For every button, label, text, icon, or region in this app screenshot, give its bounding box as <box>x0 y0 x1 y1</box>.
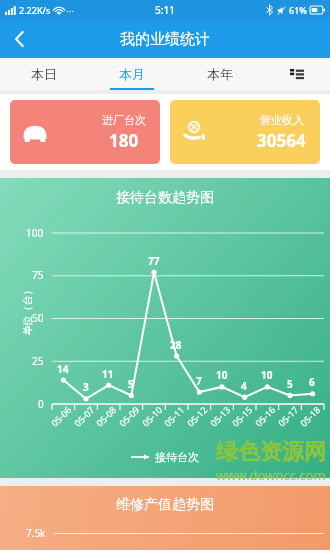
staticText: 单位（台） <box>20 285 33 335</box>
staticText: 05-17 <box>275 403 301 429</box>
staticText: 11 <box>102 367 114 381</box>
staticText: 本月 <box>119 66 145 82</box>
button[interactable]: 营业收入 <box>170 100 320 164</box>
button[interactable]: 进厂台次 <box>10 100 160 164</box>
staticText: 维修产值趋势图 <box>0 496 330 514</box>
staticText: 100 <box>26 226 44 240</box>
staticText: 本年 <box>207 66 233 82</box>
staticText: 05-12 <box>184 403 210 429</box>
staticText: 10 <box>216 368 228 382</box>
button[interactable]: More options <box>264 58 330 90</box>
staticText: 77 <box>148 254 160 268</box>
staticText: 接待台次 <box>155 450 199 464</box>
staticText: 28 <box>170 338 182 352</box>
staticText: www.downcc.com <box>216 466 326 484</box>
staticText: 05-06 <box>48 403 74 429</box>
staticText: 05-09 <box>116 403 142 429</box>
staticText: 05-18 <box>297 403 323 429</box>
staticText: 75 <box>32 268 44 282</box>
staticText: 14 <box>57 362 69 376</box>
staticText: 10 <box>261 368 273 382</box>
staticText: 180 <box>109 129 139 152</box>
staticText: 05-08 <box>93 403 119 429</box>
staticText: 61% <box>289 4 307 16</box>
staticText: 7 <box>196 374 202 388</box>
button[interactable]: Back <box>0 20 38 58</box>
staticText: 2.22K/s <box>19 4 51 16</box>
staticText: 7.5k <box>26 526 46 540</box>
staticText: 5:11 <box>155 3 175 17</box>
staticText: 4 <box>241 379 247 393</box>
staticText: 绿色资源网 <box>216 438 326 466</box>
button[interactable]: 本年 <box>176 58 264 90</box>
staticText: 05-07 <box>71 403 97 429</box>
staticText: 05-16 <box>252 403 278 429</box>
staticText: 我的业绩统计 <box>120 30 210 49</box>
staticText: 5 <box>128 377 134 391</box>
staticText: 营业收入 <box>260 113 304 127</box>
staticText: 50 <box>32 311 44 325</box>
staticText: 进厂台次 <box>102 113 146 127</box>
staticText: 6 <box>309 375 315 389</box>
staticText: 0 <box>38 397 44 411</box>
staticText: 05-15 <box>229 403 255 429</box>
button[interactable]: 本月 <box>88 58 176 90</box>
staticText: 接待台数趋势图 <box>0 189 330 207</box>
button[interactable]: 本日 <box>0 58 88 90</box>
staticText: 本日 <box>31 66 57 82</box>
staticText: 3 <box>83 380 89 394</box>
staticText: 25 <box>32 354 44 368</box>
staticText: 05-13 <box>207 403 233 429</box>
staticText: 05-10 <box>139 403 165 429</box>
staticText: 5 <box>287 377 293 391</box>
staticText: 30564 <box>257 129 306 152</box>
staticText: 05-11 <box>161 403 187 429</box>
